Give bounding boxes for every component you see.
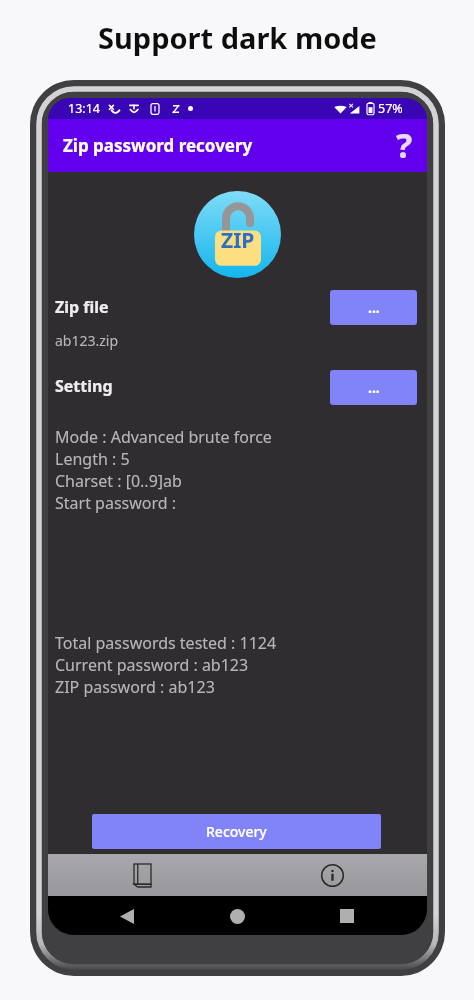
- button[interactable]: Help: [384, 122, 424, 162]
- staticText: Support dark mode: [98, 18, 377, 57]
- staticText: Mode : Advanced brute force: [55, 426, 272, 448]
- staticText: ZIP password : ab123: [55, 676, 215, 698]
- button[interactable]: Info: [237, 854, 427, 896]
- staticText: Charset : [0..9]ab: [55, 470, 182, 492]
- staticText: Length : 5: [55, 448, 130, 470]
- button[interactable]: Back: [110, 899, 144, 933]
- staticText: ZIP: [221, 226, 255, 255]
- staticText: Zip password recovery: [63, 134, 253, 157]
- button[interactable]: Browse: [330, 290, 417, 325]
- button[interactable]: Home: [220, 899, 254, 933]
- staticText: Start password :: [55, 492, 177, 514]
- staticText: ?: [396, 122, 413, 162]
- staticText: Current password : ab123: [55, 654, 249, 676]
- button[interactable]: Recent apps: [330, 899, 364, 933]
- button[interactable]: Browse: [330, 370, 417, 405]
- staticText: Recovery: [206, 822, 267, 841]
- button[interactable]: Manual: [48, 854, 237, 896]
- staticText: Zip file: [55, 296, 109, 318]
- staticText: Setting: [55, 375, 113, 397]
- staticText: ...: [368, 378, 380, 397]
- staticText: Total passwords tested : 1124: [55, 632, 277, 654]
- staticText: 57%: [378, 100, 403, 117]
- staticText: 13:14: [68, 100, 100, 117]
- staticText: ...: [368, 298, 380, 317]
- staticText: ab123.zip: [55, 331, 119, 350]
- button[interactable]: Recovery: [92, 814, 381, 849]
